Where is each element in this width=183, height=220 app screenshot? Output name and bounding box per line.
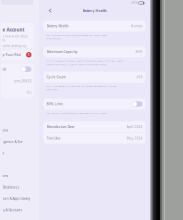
staticText: een & App Library — [2, 196, 30, 201]
button[interactable]: First Use — [43, 133, 145, 144]
staticText: April 2024 — [126, 124, 142, 129]
staticText: s — [2, 151, 4, 155]
button[interactable]: Maximum Capacity — [43, 46, 145, 57]
staticText: plete setting up your — [2, 44, 26, 52]
staticText: 80% Limit — [46, 102, 62, 106]
staticText: 80% — [131, 1, 137, 5]
staticText: Your iPad will stop charging at about 80… — [46, 111, 107, 115]
staticText: 86% — [135, 49, 142, 54]
staticText: Cycle Count — [46, 75, 65, 79]
button[interactable]: On — [1, 87, 33, 98]
staticText: Maximum Capacity — [46, 49, 77, 54]
staticText: le Account. — [2, 53, 18, 57]
button[interactable]: de — [1, 63, 33, 75]
staticText: Battery Health — [46, 24, 68, 28]
staticText: This is the number of times that your ba… — [46, 84, 117, 91]
staticText: 439 — [136, 75, 142, 79]
button[interactable]: ons — [1, 170, 33, 181]
staticText: a few more steps to — [2, 34, 27, 42]
staticText: This is a measure of battery capacity re… — [46, 59, 123, 66]
button[interactable]: een & App Library — [1, 193, 33, 204]
button[interactable]: ome_DS432 — [1, 75, 33, 87]
button[interactable]: Manufacture Date — [43, 121, 145, 132]
button[interactable]: Battery Health — [43, 20, 145, 31]
button[interactable]: igence & Siri — [1, 136, 33, 147]
staticText: Brightness — [2, 185, 19, 189]
staticText: 1 — [28, 52, 30, 57]
staticText: ons — [2, 173, 8, 178]
button[interactable]: Back — [39, 6, 54, 14]
staticText: May 2024 — [126, 136, 142, 140]
staticText: Normal — [130, 24, 142, 28]
button[interactable]: ons — [1, 124, 33, 136]
staticText: igence & Siri — [2, 139, 22, 144]
staticText: On — [26, 90, 31, 95]
button[interactable]: g & Gestures — [1, 204, 33, 216]
staticText: e Account — [2, 26, 24, 33]
staticText: Manufacture Date — [46, 124, 74, 129]
staticText: Battery Health — [82, 8, 106, 13]
staticText: p Your iPad — [2, 52, 20, 57]
button[interactable]: Brightness — [1, 181, 33, 193]
button[interactable]: 80% Limit — [43, 98, 145, 109]
button[interactable]: Cycle Count — [43, 71, 145, 82]
staticText: First Use — [46, 136, 60, 140]
staticText: This information is not available becaus… — [46, 33, 107, 40]
button[interactable]: p Your iPad — [1, 49, 39, 60]
button[interactable]: s — [1, 147, 33, 159]
staticText: ons — [2, 128, 8, 132]
staticText: ome_DS432 — [13, 79, 31, 83]
staticText: de — [2, 67, 6, 71]
staticText: g & Gestures — [2, 208, 22, 212]
